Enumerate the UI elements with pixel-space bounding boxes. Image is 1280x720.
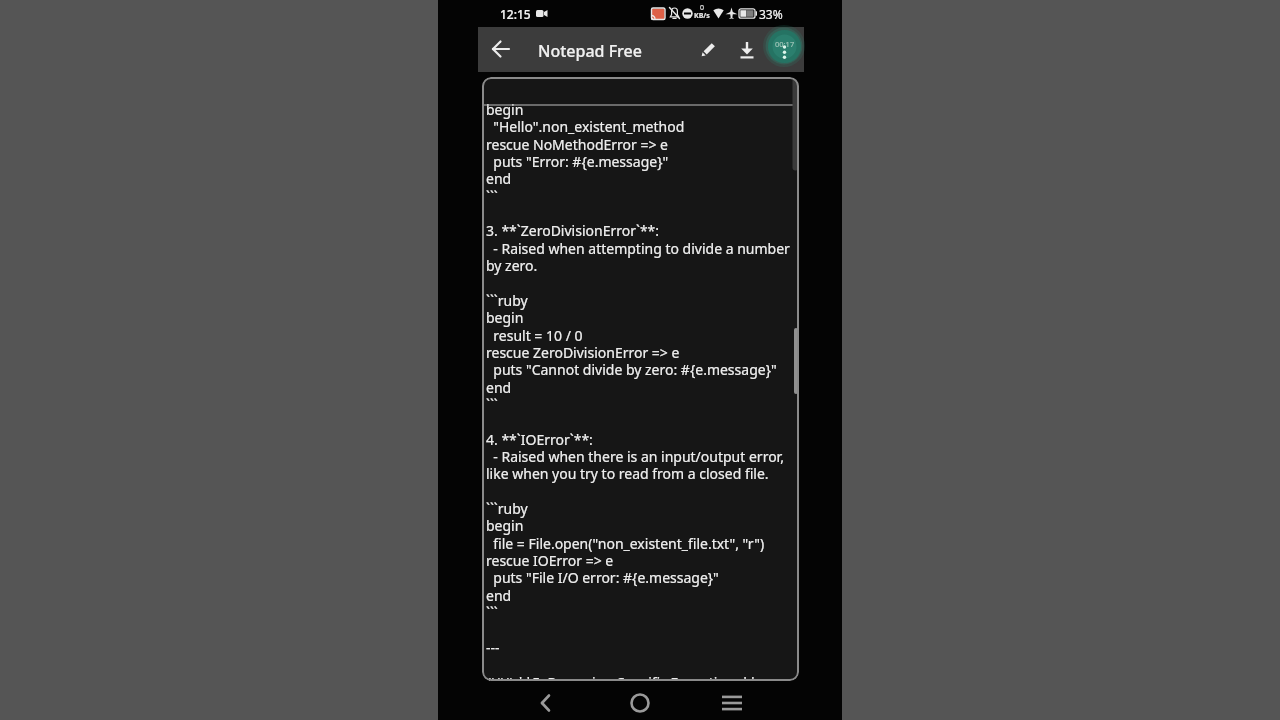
staticText: 0 xyxy=(700,3,705,13)
staticText: ``` xyxy=(486,603,498,622)
button[interactable] xyxy=(626,689,654,717)
staticText: result = 10 / 0 xyxy=(486,326,583,345)
staticText: ```ruby xyxy=(486,499,528,518)
staticText: begin xyxy=(486,100,524,119)
button[interactable]: 00:17 xyxy=(768,30,801,63)
staticText: "Hello".non_existent_method xyxy=(486,117,685,136)
staticText: 3. **`ZeroDivisionError`**: xyxy=(486,221,660,240)
staticText: 4. **`IOError`**: xyxy=(486,430,593,449)
staticText: KB/s xyxy=(694,11,710,21)
staticText: puts "Error: #{e.message}" xyxy=(486,152,669,171)
staticText: ``` xyxy=(486,187,498,206)
staticText: Notepad Free xyxy=(538,40,642,62)
staticText: puts "Cannot divide by zero: #{e.message… xyxy=(486,360,777,379)
staticText: end xyxy=(486,169,512,188)
staticText: rescue NoMethodError => e xyxy=(486,135,669,154)
staticText: - Raised when there is an input/output e… xyxy=(486,447,784,466)
staticText: 00:17 xyxy=(775,39,795,49)
staticText: end xyxy=(486,586,512,605)
staticText: ``` xyxy=(486,395,498,414)
staticText: rescue IOError => e xyxy=(486,551,614,570)
staticText: --- xyxy=(486,638,500,657)
staticText: begin xyxy=(486,308,524,327)
staticText: end xyxy=(486,378,512,397)
staticText: - Raised when attempting to divide a num… xyxy=(486,239,790,258)
staticText: like when you try to read from a closed … xyxy=(486,464,769,483)
staticText: 33% xyxy=(759,6,783,22)
staticText: rescue ZeroDivisionError => e xyxy=(486,343,680,362)
button[interactable] xyxy=(487,35,515,63)
button[interactable] xyxy=(532,689,560,717)
button[interactable]: begin xyxy=(482,77,799,681)
button[interactable] xyxy=(718,689,746,717)
staticText: by zero. xyxy=(486,256,538,275)
staticText: file = File.open("non_existent_file.txt"… xyxy=(486,534,765,553)
staticText: puts "File I/O error: #{e.message}" xyxy=(486,568,719,587)
button[interactable] xyxy=(733,36,761,64)
staticText: ### **5. Recursion-Specific Exceptions** xyxy=(486,673,757,681)
staticText: 12:15 xyxy=(500,6,531,22)
staticText: begin xyxy=(486,516,524,535)
staticText: ```ruby xyxy=(486,291,528,310)
button[interactable] xyxy=(694,36,722,64)
